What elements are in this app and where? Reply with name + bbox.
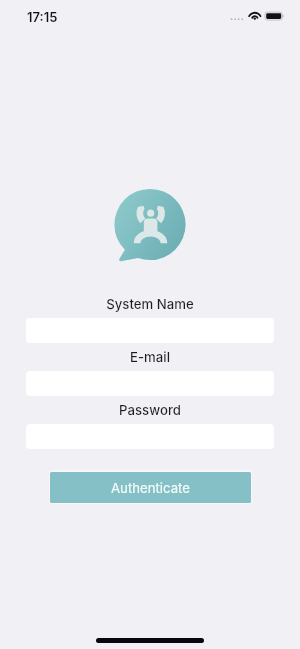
staticText: E-mail [0,349,300,365]
staticText: Authenticate [111,480,190,496]
staticText: System Name [0,296,300,312]
staticText: 17:15 [27,9,58,25]
other: Status icons [228,10,286,23]
staticText: Password [0,402,300,418]
button[interactable]: Authenticate [50,472,251,503]
